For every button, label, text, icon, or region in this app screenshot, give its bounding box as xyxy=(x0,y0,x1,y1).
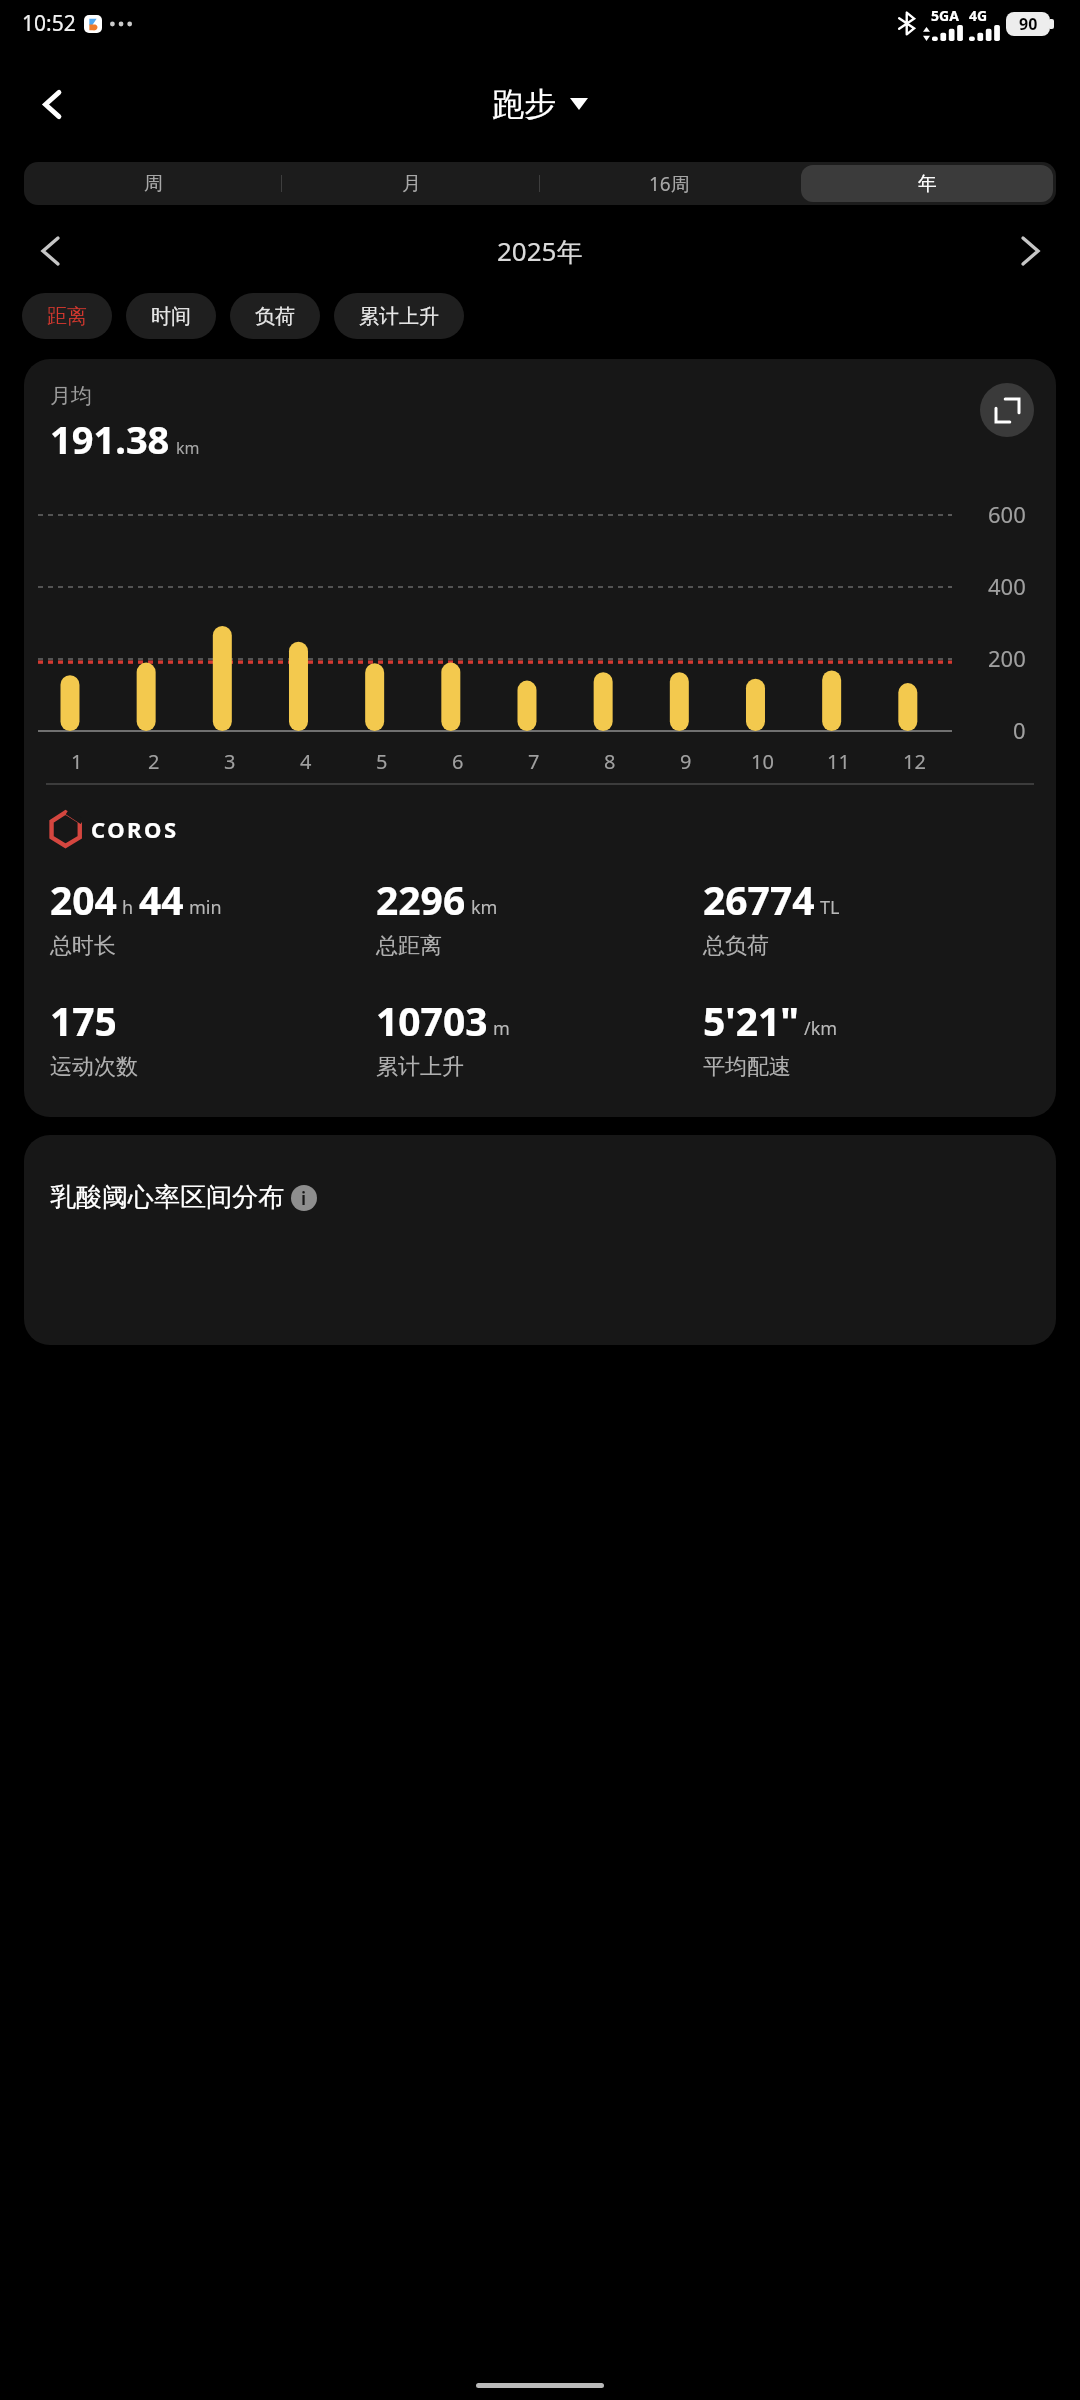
staticText: 2025年 xyxy=(497,233,583,269)
button[interactable]: 距离 xyxy=(22,293,112,339)
staticText: m xyxy=(493,1016,510,1041)
staticText: 累计上升 xyxy=(376,1053,464,1081)
staticText: 5 xyxy=(376,748,388,775)
staticText: 运动次数 xyxy=(50,1053,138,1081)
staticText: 乳酸阈心率区间分布 xyxy=(50,1181,284,1214)
staticText: 5GA xyxy=(931,6,959,25)
staticText: 200 xyxy=(988,643,1026,673)
staticText: 月 xyxy=(402,172,421,196)
staticText: 累计上升 xyxy=(359,304,439,329)
staticText: 总负荷 xyxy=(703,932,769,960)
staticText: 204 xyxy=(50,873,117,926)
staticText: km xyxy=(176,437,200,459)
staticText: 10:52 xyxy=(22,9,76,38)
button[interactable]: 月 xyxy=(285,165,537,202)
button[interactable]: Previous year xyxy=(24,225,76,277)
staticText: 4 xyxy=(300,748,312,775)
button[interactable]: 年 xyxy=(801,165,1053,202)
staticText: 10 xyxy=(751,748,774,775)
staticText: 总距离 xyxy=(376,932,442,960)
staticText: 周 xyxy=(144,172,163,196)
staticText: 年 xyxy=(918,172,937,196)
button[interactable]: 乳酸阈心率区间分布 xyxy=(50,1181,317,1214)
staticText: 191.38 xyxy=(50,413,170,465)
staticText: 总时长 xyxy=(50,932,116,960)
staticText: 400 xyxy=(988,571,1026,601)
staticText: 1 xyxy=(71,748,83,775)
staticText: 175 xyxy=(50,994,117,1047)
staticText: 跑步 xyxy=(492,84,556,124)
staticText: COROS xyxy=(91,814,179,844)
staticText: 时间 xyxy=(151,304,191,329)
staticText: 负荷 xyxy=(255,304,295,329)
staticText: 5'21" xyxy=(703,994,799,1047)
staticText: 2 xyxy=(148,748,160,775)
staticText: 90 xyxy=(1019,13,1038,35)
button[interactable]: 周 xyxy=(27,165,279,202)
button[interactable]: Expand chart xyxy=(980,383,1034,437)
staticText: h xyxy=(122,895,134,920)
button[interactable]: 负荷 xyxy=(230,293,320,339)
staticText: 3 xyxy=(224,748,236,775)
button[interactable]: 跑步 xyxy=(484,76,596,132)
staticText: 8 xyxy=(604,748,616,775)
staticText: 11 xyxy=(827,748,850,775)
staticText: i xyxy=(301,1187,307,1210)
staticText: 0 xyxy=(1013,715,1026,745)
staticText: 10703 xyxy=(376,994,488,1047)
staticText: 16周 xyxy=(649,171,690,197)
staticText: 2296 xyxy=(376,873,466,926)
button[interactable]: 累计上升 xyxy=(334,293,464,339)
other: Info xyxy=(291,1185,317,1211)
staticText: 12 xyxy=(903,748,926,775)
staticText: min xyxy=(189,895,222,920)
staticText: 平均配速 xyxy=(703,1053,791,1081)
staticText: /km xyxy=(804,1016,838,1041)
staticText: 600 xyxy=(988,499,1026,529)
staticText: 4G xyxy=(969,6,988,25)
staticText: 7 xyxy=(528,748,540,775)
staticText: 距离 xyxy=(47,304,87,329)
staticText: 26774 xyxy=(703,873,815,926)
staticText: 6 xyxy=(452,748,464,775)
staticText: km xyxy=(471,895,498,920)
button[interactable]: 16周 xyxy=(543,165,795,202)
staticText: 9 xyxy=(680,748,692,775)
button[interactable]: Back xyxy=(20,72,84,136)
staticText: 月均 xyxy=(50,383,92,409)
staticText: TL xyxy=(820,895,840,920)
button[interactable]: Next year xyxy=(1004,225,1056,277)
staticText: 44 xyxy=(139,873,184,926)
button[interactable]: 时间 xyxy=(126,293,216,339)
